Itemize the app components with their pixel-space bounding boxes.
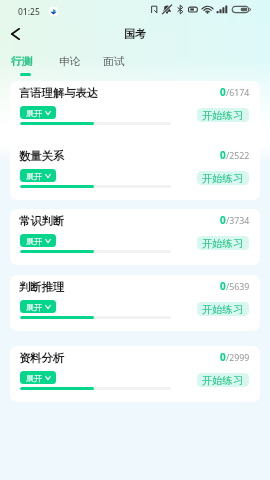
staticText: 展开 — [26, 373, 42, 383]
button[interactable]: 数量关系 — [10, 144, 260, 200]
staticText: 常识判断 — [19, 214, 65, 228]
staticText: 0 — [220, 213, 226, 227]
staticText: /2999 — [226, 352, 250, 364]
staticText: 0 — [220, 350, 226, 364]
staticText: 展开 — [26, 171, 42, 181]
staticText: 判断推理 — [19, 280, 65, 294]
button[interactable]: 开始练习 — [197, 108, 249, 122]
staticText: 面试 — [103, 55, 125, 69]
button[interactable]: 开始练习 — [197, 373, 249, 387]
staticText: /3734 — [226, 215, 250, 227]
button[interactable]: 展开 — [20, 169, 56, 182]
button[interactable]: Back — [3, 20, 27, 48]
button[interactable]: 言语理解与表达 — [10, 81, 260, 137]
staticText: 开始练习 — [202, 109, 244, 122]
staticText: 展开 — [26, 108, 42, 118]
staticText: 行测 — [11, 55, 33, 69]
staticText: /5639 — [226, 281, 250, 293]
button[interactable]: 申论 — [59, 50, 81, 76]
staticText: /2522 — [226, 150, 250, 162]
staticText: 开始练习 — [202, 172, 244, 185]
button[interactable]: 展开 — [20, 234, 56, 247]
staticText: 开始练习 — [202, 237, 244, 250]
button[interactable]: 展开 — [20, 371, 56, 384]
button[interactable]: 资料分析 — [10, 346, 260, 402]
button[interactable]: 开始练习 — [197, 302, 249, 316]
staticText: 申论 — [59, 55, 81, 69]
staticText: 0 — [220, 148, 226, 162]
button[interactable]: 面试 — [103, 50, 125, 76]
staticText: 展开 — [26, 302, 42, 312]
button[interactable]: 开始练习 — [197, 171, 249, 185]
button[interactable]: 展开 — [20, 300, 56, 313]
staticText: 展开 — [26, 236, 42, 246]
staticText: 01:25 — [18, 6, 40, 18]
staticText: 开始练习 — [202, 303, 244, 316]
staticText: 国考 — [124, 27, 146, 41]
button[interactable]: 开始练习 — [197, 236, 249, 250]
staticText: 言语理解与表达 — [19, 86, 99, 100]
staticText: 0 — [220, 279, 226, 293]
button[interactable]: 判断推理 — [10, 275, 260, 331]
staticText: 开始练习 — [202, 374, 244, 387]
button[interactable]: 行测 — [11, 50, 33, 76]
button[interactable]: 常识判断 — [10, 209, 260, 265]
button[interactable]: 展开 — [20, 106, 56, 119]
staticText: 0 — [220, 85, 226, 99]
staticText: 数量关系 — [19, 149, 65, 163]
staticText: 资料分析 — [19, 351, 65, 365]
staticText: /6174 — [226, 87, 250, 99]
